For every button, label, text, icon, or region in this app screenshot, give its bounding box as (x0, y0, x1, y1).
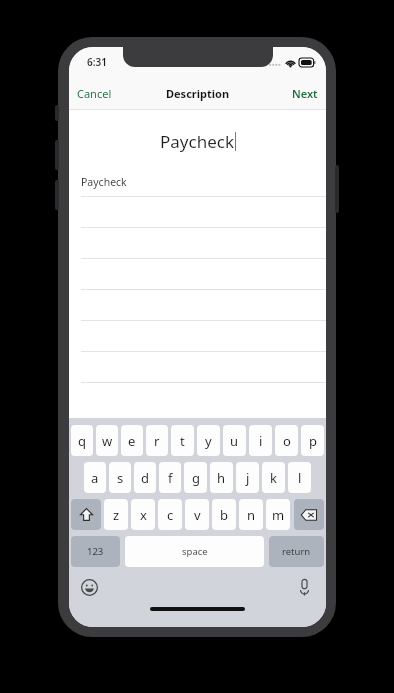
staticText: e (128, 432, 136, 450)
button[interactable]: u (223, 425, 246, 456)
button[interactable] (69, 228, 326, 259)
button[interactable]: e (121, 425, 143, 456)
button[interactable]: Paycheck (160, 130, 236, 153)
button[interactable]: p (301, 425, 324, 456)
staticText: p (309, 432, 317, 450)
button[interactable] (69, 259, 326, 290)
button[interactable]: Next (284, 80, 326, 107)
staticText: m (272, 506, 285, 524)
button[interactable] (69, 352, 326, 383)
button[interactable]: space (125, 536, 264, 567)
staticText: Paycheck (160, 130, 234, 153)
button[interactable]: i (249, 425, 272, 456)
button[interactable]: f (159, 462, 181, 493)
button[interactable]: x (131, 499, 155, 530)
staticText: Description (166, 86, 230, 101)
staticText: v (194, 506, 201, 524)
staticText: y (205, 432, 212, 450)
button[interactable]: b (212, 499, 236, 530)
button[interactable]: z (104, 499, 128, 530)
staticText: x (140, 506, 147, 524)
button[interactable]: Delete (294, 499, 324, 530)
button[interactable]: return (269, 536, 324, 567)
button[interactable]: v (185, 499, 209, 530)
staticText: return (282, 545, 311, 558)
button[interactable]: h (210, 462, 233, 493)
staticText: s (117, 469, 124, 487)
staticText: h (217, 469, 226, 487)
staticText: i (259, 432, 263, 450)
button[interactable]: m (266, 499, 290, 530)
button[interactable]: n (239, 499, 263, 530)
staticText: Next (292, 86, 318, 101)
button[interactable]: Dictation (292, 575, 316, 599)
button[interactable]: t (171, 425, 194, 456)
button[interactable]: a (84, 462, 106, 493)
button[interactable]: o (275, 425, 298, 456)
button[interactable] (69, 197, 326, 228)
staticText: Cancel (77, 86, 112, 101)
staticText: d (141, 469, 149, 487)
button[interactable]: Cancel (69, 80, 120, 107)
button[interactable]: s (109, 462, 131, 493)
button[interactable]: q (71, 425, 93, 456)
button[interactable]: l (288, 462, 311, 493)
staticText: n (247, 506, 256, 524)
staticText: a (91, 469, 99, 487)
staticText: k (270, 469, 277, 487)
staticText: g (192, 469, 200, 487)
button[interactable]: d (134, 462, 156, 493)
button[interactable]: g (184, 462, 207, 493)
staticText: j (246, 469, 250, 487)
staticText: Paycheck (81, 175, 127, 189)
staticText: o (283, 432, 291, 450)
staticText: b (220, 506, 228, 524)
button[interactable]: r (146, 425, 168, 456)
staticText: 123 (87, 545, 104, 558)
staticText: q (78, 432, 86, 450)
button[interactable]: Paycheck (69, 166, 326, 197)
staticText: space (182, 545, 208, 558)
staticText: w (102, 432, 113, 450)
button[interactable]: j (236, 462, 259, 493)
staticText: l (298, 469, 302, 487)
button[interactable] (69, 321, 326, 352)
staticText: t (180, 432, 185, 450)
button[interactable] (69, 290, 326, 321)
button[interactable]: y (197, 425, 220, 456)
button[interactable]: 123 (71, 536, 120, 567)
staticText: c (167, 506, 174, 524)
button[interactable]: k (262, 462, 285, 493)
staticText: r (154, 432, 160, 450)
button[interactable]: Emoji (77, 575, 101, 599)
button[interactable]: w (96, 425, 118, 456)
staticText: u (230, 432, 239, 450)
staticText: z (113, 506, 120, 524)
staticText: f (168, 469, 173, 487)
staticText: 6:31 (87, 55, 107, 69)
button[interactable]: Shift (71, 499, 101, 530)
button[interactable]: c (158, 499, 182, 530)
